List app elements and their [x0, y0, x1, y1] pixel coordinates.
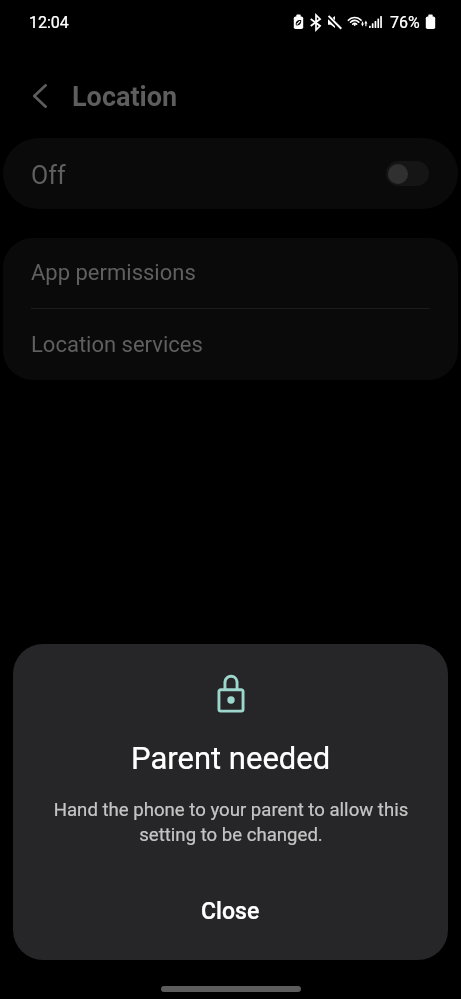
staticText: Off — [31, 161, 66, 190]
button[interactable]: Off — [3, 138, 458, 209]
staticText: Location — [72, 81, 178, 113]
staticText: Parent needed — [131, 740, 331, 776]
staticText: Location services — [31, 332, 203, 358]
button[interactable]: App permissions — [3, 238, 458, 308]
staticText: 12:04 — [29, 13, 69, 32]
staticText: App permissions — [31, 260, 196, 286]
button[interactable]: Close — [13, 869, 448, 953]
staticText: Close — [201, 898, 260, 925]
button[interactable]: Back — [18, 74, 62, 118]
staticText: 76% — [390, 13, 420, 32]
staticText: Hand the phone to your parent to allow t… — [41, 799, 421, 845]
button[interactable]: Location services — [3, 309, 458, 380]
